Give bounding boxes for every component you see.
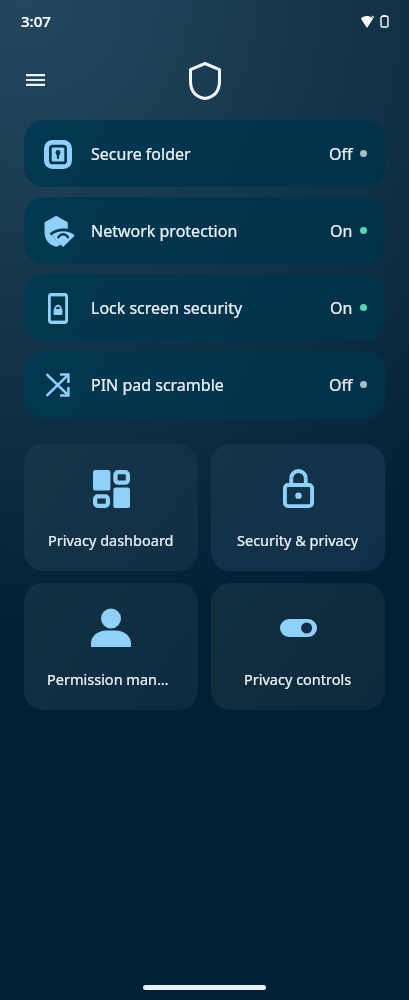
button[interactable]: Security & privacy <box>211 444 385 571</box>
button[interactable]: Secure folder <box>24 120 385 187</box>
staticText: Off <box>329 374 353 396</box>
staticText: Network protection <box>91 220 238 242</box>
button[interactable]: Security status <box>181 56 229 104</box>
staticText: Permission manager <box>47 669 175 689</box>
staticText: 3:07 <box>21 11 51 31</box>
button[interactable]: Permission manager <box>24 583 198 710</box>
staticText: On <box>330 220 353 242</box>
button[interactable]: Menu <box>11 56 59 104</box>
staticText: PIN pad scramble <box>91 374 224 396</box>
staticText: Secure folder <box>91 143 191 165</box>
button[interactable]: Privacy dashboard <box>24 444 198 571</box>
staticText: Privacy controls <box>244 669 352 689</box>
button[interactable]: PIN pad scramble <box>24 351 385 418</box>
button[interactable]: Privacy controls <box>211 583 385 710</box>
staticText: Security & privacy <box>237 530 359 550</box>
button[interactable]: Lock screen security <box>24 274 385 341</box>
staticText: On <box>330 297 353 319</box>
staticText: Lock screen security <box>91 297 243 319</box>
button[interactable]: Network protection <box>24 197 385 264</box>
staticText: Privacy dashboard <box>48 530 174 550</box>
staticText: Off <box>329 143 353 165</box>
